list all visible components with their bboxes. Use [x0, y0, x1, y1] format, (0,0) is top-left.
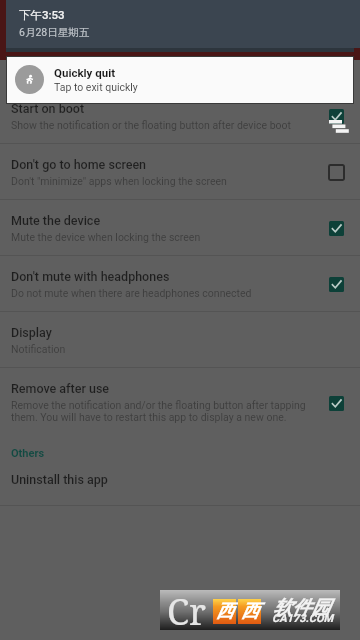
button[interactable]: Mute the device — [0, 200, 360, 255]
staticText: Remove after use — [11, 381, 110, 396]
staticText: Don't "minimize" apps when locking the s… — [11, 175, 227, 187]
staticText: Don't mute with headphones — [11, 269, 170, 284]
button[interactable]: Don't go to home screen — [0, 144, 360, 199]
button[interactable]: Quickly quit — [7, 57, 353, 103]
button[interactable]: Remove after use — [0, 368, 360, 438]
staticText: Uninstall this app — [11, 472, 108, 487]
staticText: Remove the notification and/or the float… — [11, 399, 306, 411]
staticText: 下午3:53 — [19, 8, 65, 22]
staticText: 西 — [216, 600, 234, 623]
staticText: them. You will have to restart this app … — [11, 411, 287, 423]
staticText: Mute the device when locking the screen — [11, 231, 201, 243]
staticText: Start on boot — [11, 101, 85, 116]
staticText: Tap to exit quickly — [54, 81, 138, 93]
button[interactable]: Start on boot — [0, 88, 360, 143]
staticText: Display — [11, 325, 52, 340]
staticText: Cr — [167, 587, 207, 627]
staticText: Others — [11, 447, 45, 460]
staticText: Mute the device — [11, 213, 101, 228]
button[interactable]: Remove after use — [322, 389, 350, 417]
button[interactable]: Don't mute with headphones — [0, 256, 360, 311]
staticText: 软件园 — [273, 596, 330, 620]
staticText: Don't go to home screen — [11, 157, 147, 172]
button[interactable]: Don't mute with headphones — [322, 270, 350, 298]
staticText: Show the notification or the floating bu… — [11, 119, 291, 131]
button[interactable]: Floating button — [329, 120, 350, 134]
button[interactable]: Display — [0, 312, 360, 367]
staticText: 西 — [241, 600, 259, 623]
staticText: 6月28日星期五 — [19, 26, 90, 39]
button[interactable]: Start on boot — [322, 102, 350, 130]
staticText: CA173.COM — [272, 612, 334, 625]
button[interactable]: Don't go to home screen — [322, 158, 350, 186]
staticText: Quickly quit — [54, 66, 116, 79]
button[interactable]: Uninstall this app — [0, 468, 360, 490]
staticText: Notification — [11, 343, 66, 355]
button[interactable]: Mute the device — [322, 214, 350, 242]
staticText: Do not mute when there are headphones co… — [11, 287, 252, 299]
